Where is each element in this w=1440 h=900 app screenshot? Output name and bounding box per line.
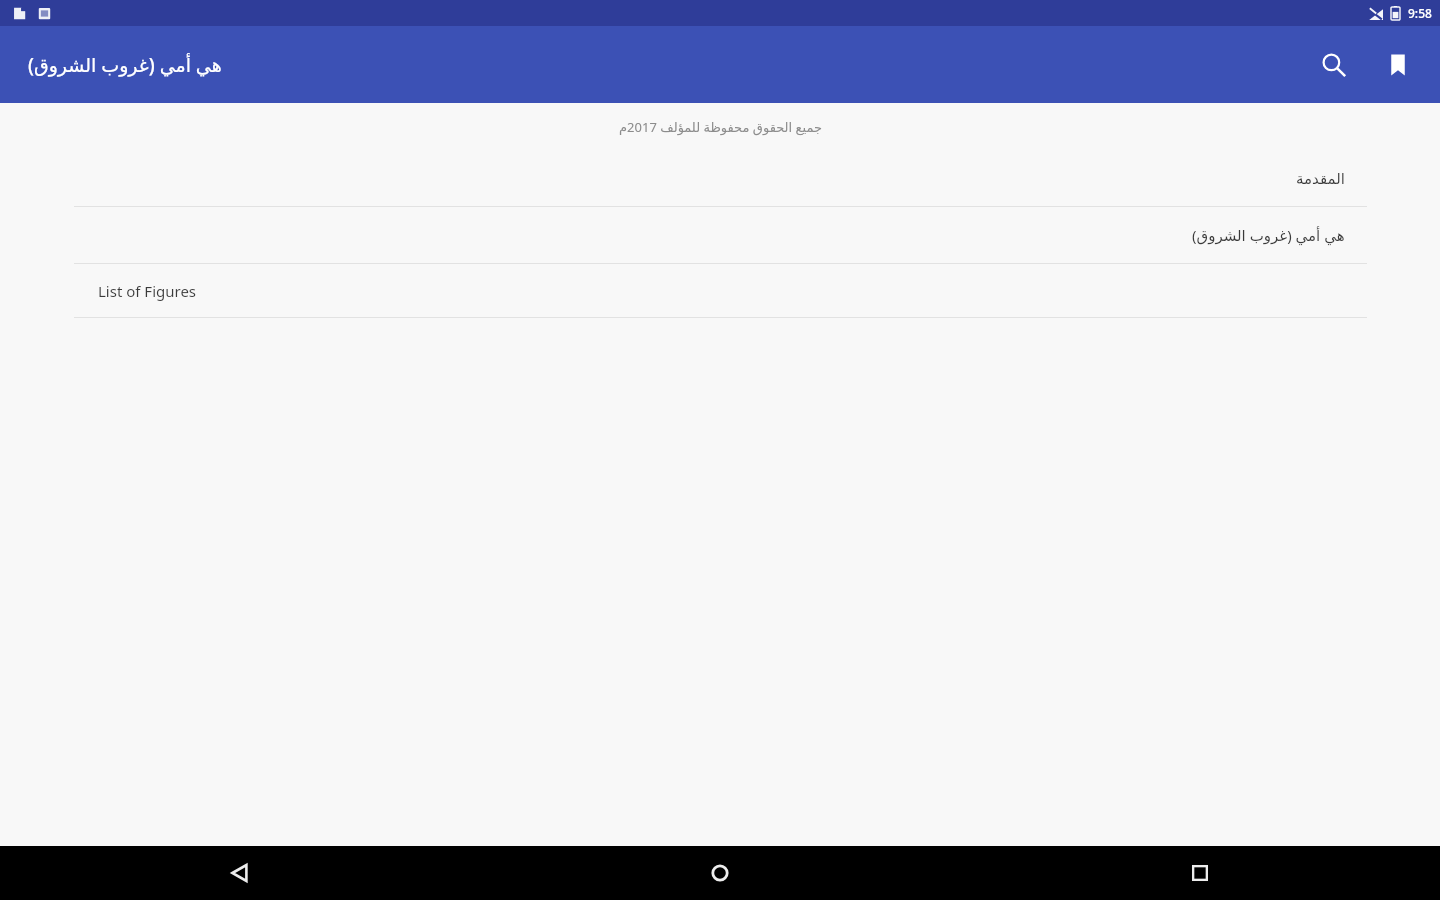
staticText: هي أمي (غروب الشروق) xyxy=(1192,225,1345,245)
button[interactable]: Recent apps xyxy=(960,846,1440,900)
staticText: هي أمي (غروب الشروق) xyxy=(28,52,222,78)
button[interactable]: Bookmarks xyxy=(1374,41,1422,89)
button[interactable]: List of Figures xyxy=(0,264,1440,317)
button[interactable]: المقدمة xyxy=(0,150,1440,206)
staticText: 9:58 xyxy=(1408,5,1432,21)
staticText: المقدمة xyxy=(1296,170,1345,187)
button[interactable]: Search xyxy=(1310,41,1358,89)
button[interactable]: Back xyxy=(0,846,480,900)
staticText: List of Figures xyxy=(98,281,197,301)
button[interactable]: هي أمي (غروب الشروق) xyxy=(0,207,1440,263)
staticText: جميع الحقوق محفوظة للمؤلف 2017م xyxy=(619,118,822,136)
button[interactable]: Home xyxy=(480,846,960,900)
